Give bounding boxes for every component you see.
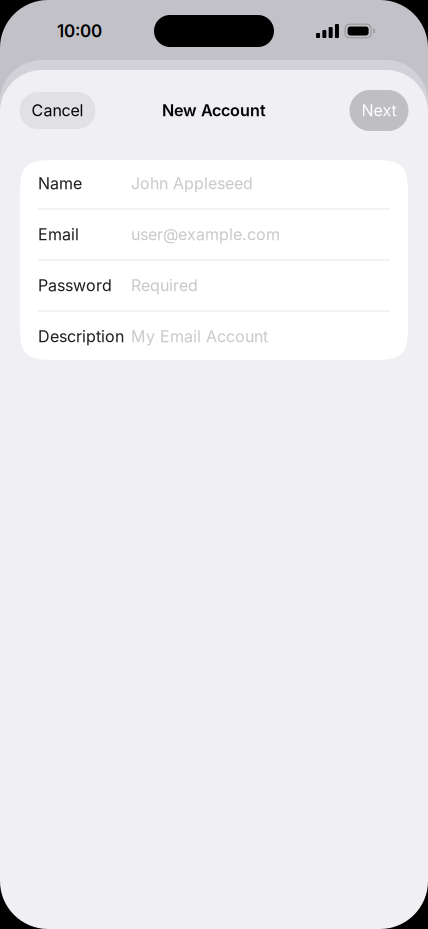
button[interactable]: Description: [20, 311, 408, 361]
staticText: Name: [38, 174, 82, 193]
staticText: Password: [38, 276, 112, 295]
staticText: John Appleseed: [131, 174, 253, 193]
staticText: New Account: [162, 101, 266, 120]
staticText: Description: [38, 327, 124, 346]
staticText: My Email Account: [131, 327, 268, 346]
staticText: Cancel: [31, 101, 83, 120]
staticText: Required: [131, 276, 198, 295]
button[interactable]: Email: [20, 209, 408, 259]
staticText: Email: [38, 225, 79, 244]
button[interactable]: Password: [20, 260, 408, 310]
staticText: user@example.com: [131, 225, 280, 244]
button[interactable]: Next: [349, 90, 408, 131]
button[interactable]: Name: [20, 158, 408, 208]
staticText: Next: [361, 101, 396, 120]
staticText: 10:00: [57, 21, 102, 41]
button[interactable]: Cancel: [19, 92, 95, 129]
